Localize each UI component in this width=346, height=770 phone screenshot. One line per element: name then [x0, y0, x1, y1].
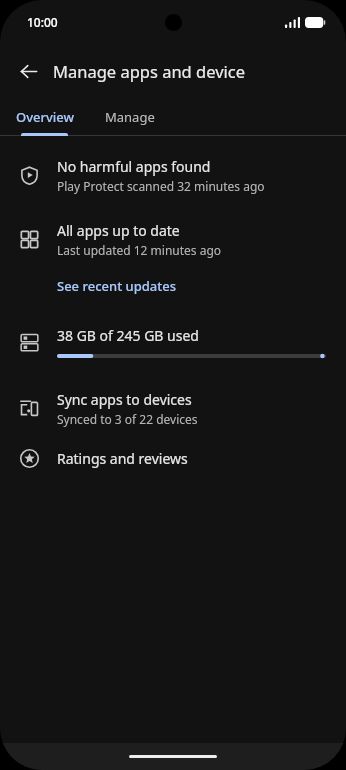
staticText: Play Protect scanned 32 minutes ago — [57, 178, 265, 194]
button[interactable]: No harmful apps found — [0, 150, 346, 201]
button[interactable]: Overview — [0, 98, 90, 136]
staticText: Ratings and reviews — [57, 449, 188, 468]
staticText: No harmful apps found — [57, 157, 211, 176]
staticText: 10:00 — [27, 14, 58, 30]
staticText: 38 GB of 245 GB used — [57, 326, 199, 345]
button[interactable]: All apps up to date — [0, 214, 346, 265]
button[interactable]: Sync apps to devices — [0, 383, 346, 434]
staticText: Sync apps to devices — [57, 390, 192, 409]
button[interactable]: 38 GB of 245 GB used — [0, 321, 346, 363]
button[interactable]: Ratings and reviews — [0, 442, 346, 475]
button[interactable]: Manage — [90, 98, 170, 136]
staticText: Manage apps and device — [53, 60, 246, 82]
button[interactable]: See recent updates — [0, 265, 346, 301]
staticText: Last updated 12 minutes ago — [57, 242, 222, 258]
staticText: Synced to 3 of 22 devices — [57, 411, 198, 427]
button[interactable]: Back — [8, 51, 48, 91]
staticText: All apps up to date — [57, 221, 180, 240]
staticText: See recent updates — [57, 277, 176, 295]
staticText: Overview — [16, 108, 75, 126]
staticText: Manage — [105, 108, 155, 126]
